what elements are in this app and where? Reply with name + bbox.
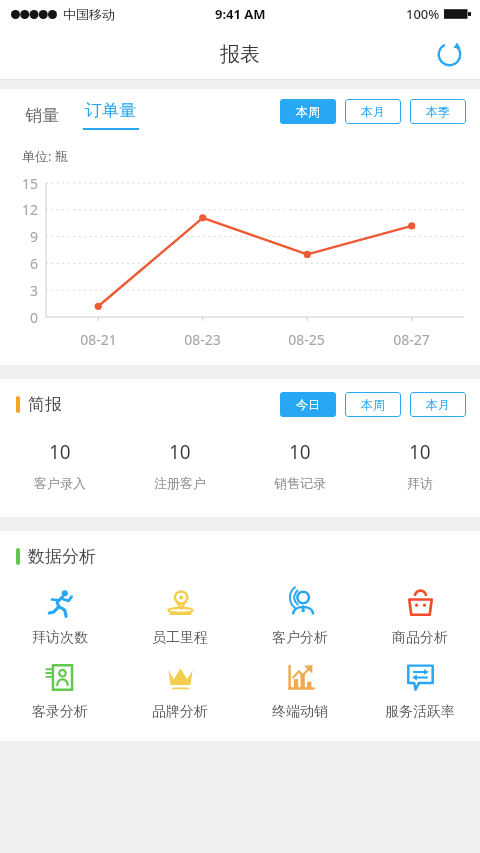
staticText: 12 (22, 200, 39, 219)
staticText: 本周 (296, 104, 320, 119)
staticText: 3 (30, 281, 39, 300)
staticText: 注册客户 (154, 475, 206, 491)
button[interactable]: 本季 (410, 99, 466, 124)
staticText: 员工里程 (152, 629, 208, 647)
button[interactable]: 10 (360, 439, 480, 491)
button[interactable]: 客录分析 (0, 661, 120, 721)
staticText: 销量 (25, 105, 59, 126)
staticText: 拜访次数 (32, 629, 88, 647)
staticText: 6 (30, 254, 39, 273)
staticText: 本周 (361, 397, 385, 412)
button[interactable]: 员工里程 (120, 587, 240, 647)
staticText: 08-21 (80, 330, 117, 349)
staticText: 0 (30, 308, 39, 327)
staticText: 08-25 (288, 330, 325, 349)
staticText: 终端动销 (272, 703, 328, 721)
staticText: 10 (49, 439, 71, 465)
button[interactable]: 10 (240, 439, 360, 491)
staticText: 10 (169, 439, 191, 465)
button[interactable]: 拜访次数 (0, 587, 120, 647)
button[interactable]: 销量 (22, 101, 62, 130)
button[interactable]: 本周 (345, 392, 401, 417)
button[interactable]: 品牌分析 (120, 661, 240, 721)
staticText: 08-23 (184, 330, 221, 349)
button[interactable]: 10 (120, 439, 240, 491)
button[interactable]: 本月 (410, 392, 466, 417)
button[interactable]: 本周 (280, 99, 336, 124)
button[interactable]: 本月 (345, 99, 401, 124)
staticText: 客户录入 (34, 475, 86, 491)
staticText: 今日 (296, 397, 320, 412)
staticText: 服务活跃率 (385, 703, 455, 721)
button[interactable]: 终端动销 (240, 661, 360, 721)
staticText: 9:41 AM (215, 5, 266, 23)
staticText: 本月 (426, 397, 450, 412)
staticText: 商品分析 (392, 629, 448, 647)
button[interactable]: 10 (0, 439, 120, 491)
staticText: 简报 (28, 394, 62, 415)
staticText: 10 (289, 439, 311, 465)
button[interactable]: 服务活跃率 (360, 661, 480, 721)
staticText: 客录分析 (32, 703, 88, 721)
staticText: 本月 (361, 104, 385, 119)
staticText: 中国移动 (63, 6, 115, 22)
button[interactable]: 今日 (280, 392, 336, 417)
staticText: 单位: 瓶 (22, 147, 68, 165)
staticText: 订单量 (85, 100, 136, 121)
button[interactable]: 客户分析 (240, 587, 360, 647)
staticText: 销售记录 (274, 475, 326, 491)
button[interactable]: Refresh (427, 32, 471, 76)
staticText: 本季 (426, 104, 450, 119)
staticText: 报表 (220, 42, 260, 67)
staticText: 15 (22, 174, 39, 193)
staticText: 拜访 (407, 475, 433, 491)
staticText: 数据分析 (28, 546, 96, 567)
staticText: 9 (30, 227, 39, 246)
staticText: 100% (406, 5, 440, 23)
button[interactable]: 订单量 (82, 100, 139, 130)
staticText: 10 (409, 439, 431, 465)
staticText: 客户分析 (272, 629, 328, 647)
staticText: 08-27 (393, 330, 430, 349)
staticText: 品牌分析 (152, 703, 208, 721)
button[interactable]: 商品分析 (360, 587, 480, 647)
